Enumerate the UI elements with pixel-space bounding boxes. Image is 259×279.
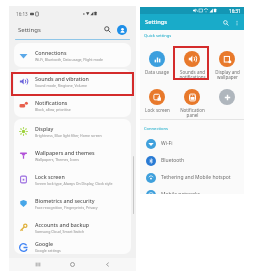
button[interactable]: Search bbox=[101, 23, 114, 36]
staticText: Accounts and backup bbox=[35, 221, 90, 228]
staticText: Google bbox=[35, 240, 54, 247]
staticText: Wallpapers, Themes, Icons bbox=[35, 157, 79, 162]
button[interactable]: Search bbox=[220, 17, 231, 28]
button[interactable] bbox=[211, 89, 243, 107]
button[interactable]: Bluetooth bbox=[140, 152, 244, 169]
staticText: Wi-Fi, Bluetooth, Data usage, Flight mod… bbox=[35, 57, 104, 62]
button[interactable]: Display bbox=[14, 119, 131, 143]
button[interactable]: Google bbox=[14, 239, 131, 254]
button[interactable]: Back bbox=[101, 258, 114, 271]
button[interactable]: Notification panel bbox=[176, 89, 208, 118]
staticText: Wi-Fi bbox=[161, 140, 173, 147]
staticText: Brightness, Blue light filter, Home scre… bbox=[35, 133, 102, 138]
button[interactable]: Accounts and backup bbox=[14, 215, 131, 239]
staticText: Sound mode, Ringtone, Volume bbox=[35, 83, 88, 88]
button[interactable]: Biometrics and security bbox=[14, 191, 131, 215]
staticText: Mobile networks bbox=[161, 191, 201, 194]
button[interactable]: Recents bbox=[31, 258, 44, 271]
button[interactable]: Lock screen bbox=[14, 167, 131, 191]
staticText: Quick settings bbox=[144, 33, 172, 39]
button[interactable]: Tethering and Mobile hotspot bbox=[140, 169, 244, 186]
staticText: Lock screen bbox=[35, 173, 65, 180]
staticText: 16:31 bbox=[229, 8, 241, 14]
button[interactable]: Account bbox=[115, 23, 128, 36]
staticText: Settings bbox=[145, 18, 168, 26]
staticText: Wallpapers and themes bbox=[35, 149, 95, 156]
staticText: Google settings bbox=[35, 248, 61, 253]
staticText: Sounds and vibration bbox=[35, 75, 89, 82]
staticText: Display and wallpaper bbox=[215, 69, 240, 80]
staticText: Block, allow, prioritise bbox=[35, 107, 71, 112]
staticText: Notification panel bbox=[180, 107, 205, 118]
staticText: Sounds and notifications bbox=[179, 69, 206, 80]
staticText: Notifications bbox=[35, 99, 68, 106]
button[interactable]: Sounds and notifications bbox=[176, 51, 208, 80]
staticText: Connections bbox=[35, 49, 67, 56]
button[interactable]: Sounds and vibration bbox=[14, 69, 131, 93]
button[interactable]: Wallpapers and themes bbox=[14, 143, 131, 167]
staticText: Connections bbox=[144, 126, 168, 132]
staticText: Face recognition, Fingerprints, Privacy bbox=[35, 205, 98, 210]
button[interactable]: Notifications bbox=[14, 93, 131, 117]
staticText: Tethering and Mobile hotspot bbox=[161, 174, 231, 181]
staticText: Settings bbox=[18, 26, 41, 34]
staticText: Bluetooth bbox=[161, 157, 185, 164]
button[interactable]: Data usage bbox=[141, 51, 173, 75]
staticText: Screen lock type, Always On Display, Clo… bbox=[35, 181, 113, 186]
button[interactable]: Wi-Fi bbox=[140, 135, 244, 152]
button[interactable]: Connections bbox=[14, 43, 131, 67]
button[interactable]: Home bbox=[66, 258, 79, 271]
staticText: Samsung Cloud, Smart Switch bbox=[35, 229, 85, 234]
button[interactable]: Lock screen bbox=[141, 89, 173, 113]
button[interactable]: Mobile networks bbox=[140, 186, 244, 194]
staticText: Display bbox=[35, 125, 54, 132]
button[interactable]: Display and wallpaper bbox=[211, 51, 243, 80]
staticText: 16:13 bbox=[16, 11, 28, 17]
staticText: Lock screen bbox=[145, 107, 170, 113]
staticText: Biometrics and security bbox=[35, 197, 95, 204]
staticText: Data usage bbox=[145, 69, 169, 75]
button[interactable]: More options bbox=[231, 17, 242, 28]
